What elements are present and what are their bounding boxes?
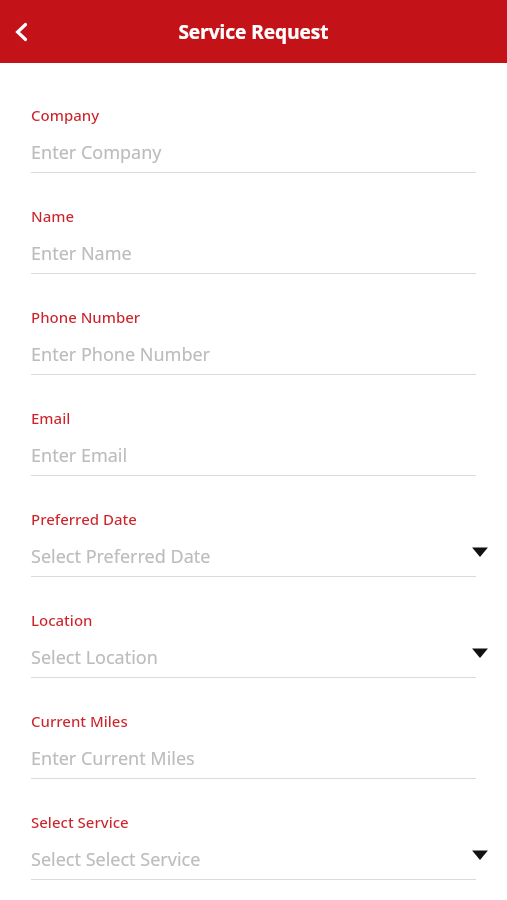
button[interactable]: Current Miles [0, 705, 507, 806]
staticText: Phone Number [31, 307, 141, 327]
button[interactable]: Phone Number [0, 301, 507, 402]
staticText: Preferred Date [31, 509, 137, 529]
staticText: Enter Company [31, 140, 162, 165]
staticText: Company [31, 105, 100, 125]
button[interactable]: Back [0, 10, 44, 54]
staticText: Service Request [0, 19, 507, 45]
staticText: Enter Name [31, 241, 132, 266]
staticText: Location [31, 610, 93, 630]
staticText: Email [31, 408, 71, 428]
staticText: Select Preferred Date [31, 544, 211, 569]
button[interactable]: Company [0, 99, 507, 200]
staticText: Name [31, 206, 75, 226]
staticText: Enter Email [31, 443, 128, 468]
staticText: Enter Phone Number [31, 342, 211, 367]
staticText: Enter Current Miles [31, 746, 195, 771]
staticText: Current Miles [31, 711, 128, 731]
staticText: Select Service [31, 812, 129, 832]
button[interactable]: Location [0, 604, 507, 705]
staticText: Select Location [31, 645, 158, 670]
button[interactable]: Select Service [0, 806, 507, 900]
staticText: Select Select Service [31, 847, 201, 872]
button[interactable]: Email [0, 402, 507, 503]
button[interactable]: Preferred Date [0, 503, 507, 604]
button[interactable]: Name [0, 200, 507, 301]
